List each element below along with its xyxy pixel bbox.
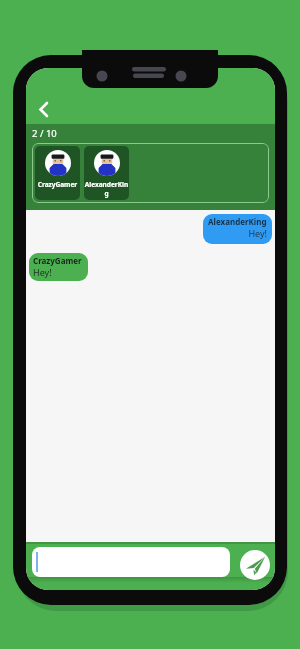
button[interactable]: AlexanderKing: [203, 214, 272, 244]
button[interactable]: AlexanderKing: [84, 146, 129, 200]
staticText: CrazyGamer: [33, 255, 82, 266]
staticText: Hey!: [33, 266, 52, 278]
button[interactable]: CrazyGamer: [35, 146, 80, 200]
button[interactable]: [34, 100, 52, 118]
button[interactable]: CrazyGamer: [29, 253, 88, 281]
staticText: Hey!: [208, 227, 267, 239]
staticText: 2 / 10: [32, 127, 57, 140]
button[interactable]: [32, 547, 230, 577]
staticText: AlexanderKing: [208, 216, 267, 227]
staticText: CrazyGamer: [35, 180, 80, 189]
button[interactable]: [240, 550, 270, 580]
staticText: AlexanderKing: [84, 180, 129, 198]
